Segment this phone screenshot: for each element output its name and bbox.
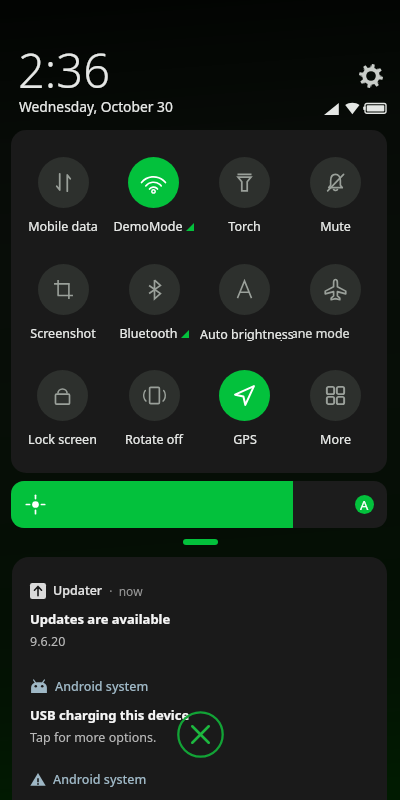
staticText: Bluetooth xyxy=(119,325,178,342)
button[interactable]: Lock screen xyxy=(28,370,97,448)
button[interactable]: GPS xyxy=(219,370,270,448)
staticText: Mute xyxy=(320,218,351,235)
staticText: Airplane mode xyxy=(263,325,350,342)
staticText: More xyxy=(320,431,351,448)
button[interactable]: Torch xyxy=(219,157,270,235)
staticText: DemoMode xyxy=(113,218,183,235)
staticText: A xyxy=(360,496,369,514)
staticText: Screenshot xyxy=(30,325,96,342)
button[interactable]: Auto brightness xyxy=(199,264,290,342)
staticText: Android system xyxy=(55,678,149,695)
staticText: Torch xyxy=(228,218,261,235)
button[interactable]: Android system xyxy=(30,678,387,746)
button[interactable]: Mobile data xyxy=(28,157,98,235)
staticText: Updater xyxy=(53,582,103,599)
staticText: Rotate off xyxy=(125,431,183,448)
button[interactable]: Mute xyxy=(310,157,361,235)
staticText: Android system xyxy=(53,771,147,788)
staticText: Auto brightness xyxy=(200,326,294,340)
staticText: Auto brightness xyxy=(199,325,290,342)
staticText: GPS xyxy=(233,431,257,448)
button[interactable]: Updater xyxy=(30,582,387,650)
staticText: Tap for more options. xyxy=(30,729,157,746)
staticText: USB charging this device xyxy=(30,706,190,724)
button[interactable]: Close xyxy=(177,711,224,758)
button[interactable]: Rotate off xyxy=(125,370,183,448)
button[interactable]: Android system xyxy=(30,771,147,788)
button[interactable]: Auto brightness xyxy=(355,495,374,514)
staticText: · now xyxy=(103,583,143,599)
staticText: 2:36 xyxy=(18,38,110,102)
button[interactable]: Settings xyxy=(359,64,383,88)
staticText: Wednesday, October 30 xyxy=(19,97,173,116)
button[interactable]: Bluetooth xyxy=(119,264,189,342)
button[interactable]: DemoMode xyxy=(113,157,194,235)
staticText: 9.6.20 xyxy=(30,633,66,650)
button[interactable]: Airplane mode xyxy=(292,264,379,342)
button[interactable]: More xyxy=(310,370,361,448)
staticText: Updates are available xyxy=(30,610,171,628)
button[interactable]: Screenshot xyxy=(30,264,96,342)
button[interactable] xyxy=(11,481,293,528)
staticText: Mobile data xyxy=(28,218,98,235)
staticText: Lock screen xyxy=(28,431,97,448)
